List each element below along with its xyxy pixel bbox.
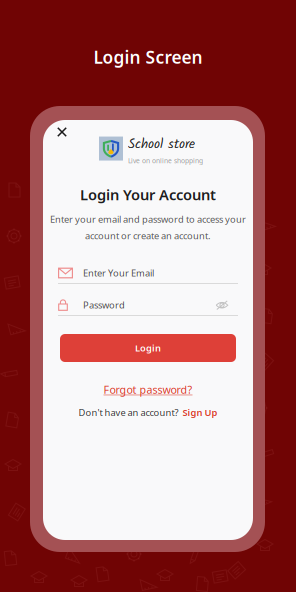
staticText: Enter Your Email: [83, 267, 154, 279]
staticText: Enter your email and password to access …: [50, 213, 246, 225]
staticText: Live on online shopping: [128, 156, 203, 165]
staticText: Login: [135, 342, 161, 354]
staticText: Login Screen: [93, 45, 202, 68]
staticText: Login Your Account: [80, 185, 216, 204]
button[interactable]: Sign Up: [182, 406, 217, 419]
button[interactable]: Show password: [214, 298, 230, 312]
button[interactable]: Login: [60, 334, 236, 362]
button[interactable]: Forgot password?: [43, 383, 253, 396]
staticText: Forgot password?: [103, 382, 192, 397]
staticText: account or create an account.: [85, 229, 211, 242]
staticText: Sign Up: [182, 406, 217, 419]
button[interactable]: Close: [49, 119, 75, 145]
staticText: School store: [128, 134, 195, 155]
staticText: Don't have an account?: [78, 406, 178, 419]
staticText: Password: [83, 299, 125, 311]
